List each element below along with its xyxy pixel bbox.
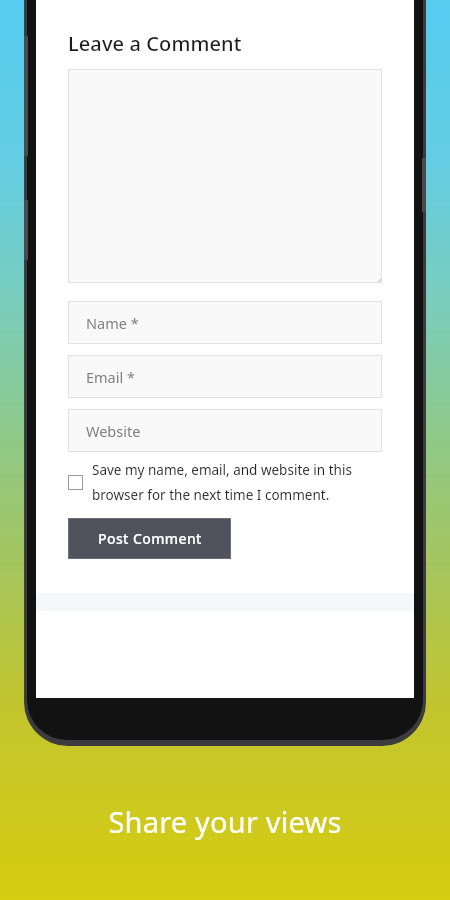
staticText: Save my name, email, and website in this…: [92, 461, 386, 504]
staticText: Name *: [86, 313, 139, 333]
button[interactable]: Name *: [68, 301, 382, 344]
button[interactable]: Save my details checkbox: [68, 461, 386, 504]
button[interactable]: Email *: [68, 355, 382, 398]
staticText: Share your views: [0, 802, 450, 841]
button[interactable]: Website: [68, 409, 382, 452]
staticText: Leave a Comment: [68, 30, 242, 57]
staticText: Post Comment: [98, 529, 202, 548]
staticText: Website: [86, 421, 141, 441]
other: Save my details checkbox: [68, 475, 83, 490]
button[interactable]: Post Comment: [68, 518, 231, 559]
staticText: Email *: [86, 367, 135, 387]
